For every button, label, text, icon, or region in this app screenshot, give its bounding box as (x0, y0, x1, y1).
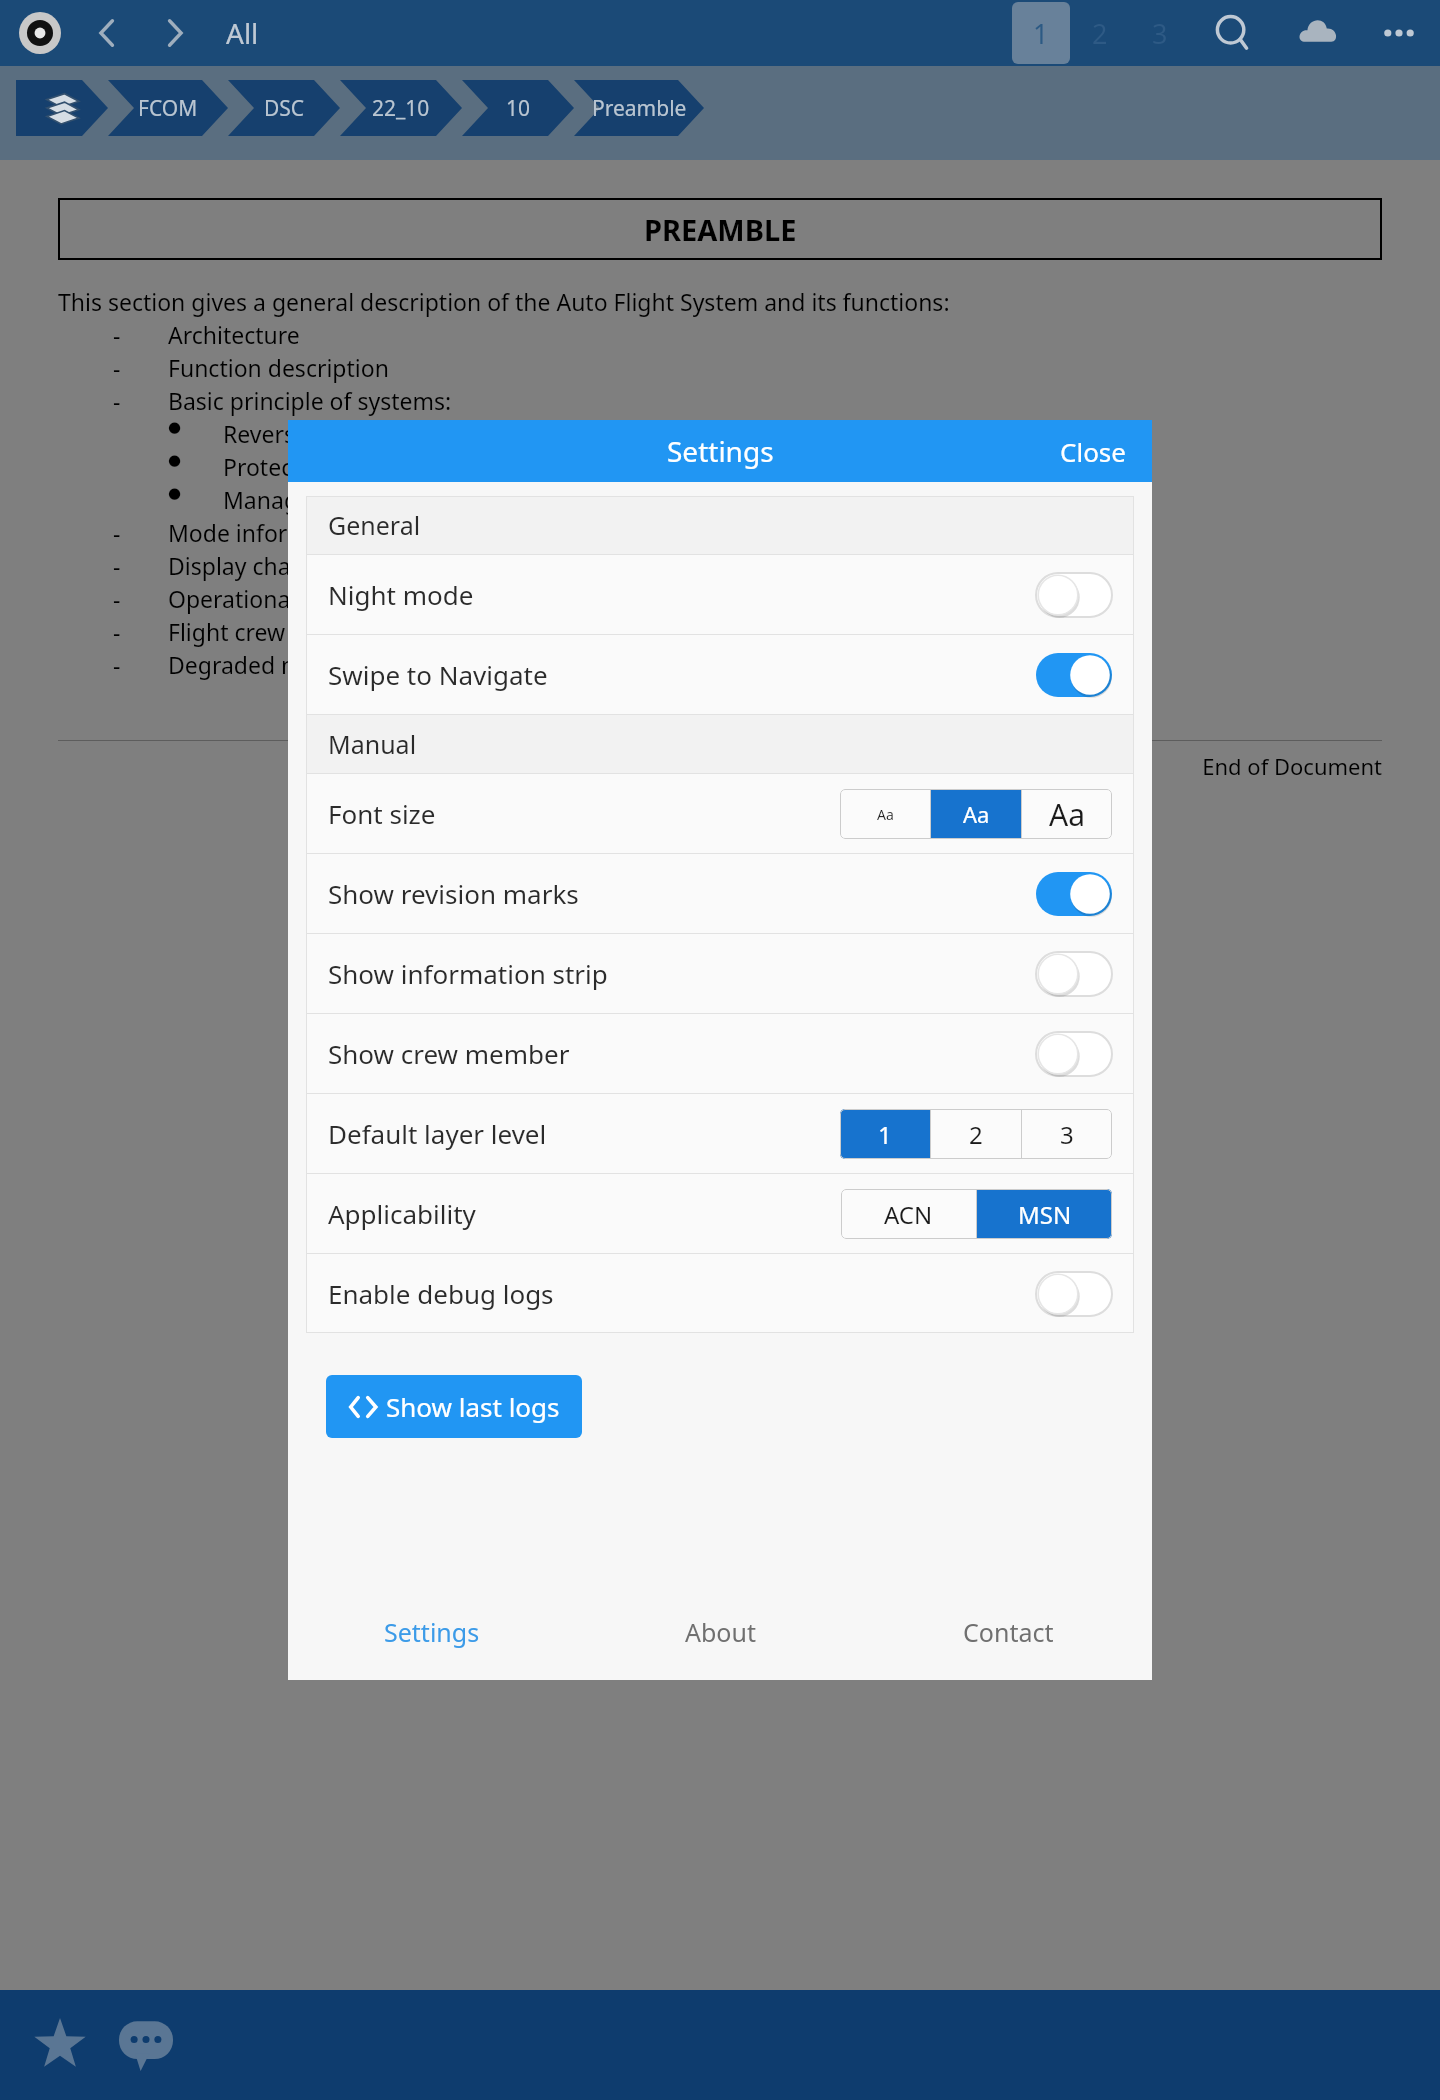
button[interactable]: About (576, 1584, 864, 1680)
button[interactable]: More options (1374, 8, 1424, 58)
staticText: ● (168, 418, 223, 435)
staticText: Managed and selected guidance (223, 484, 574, 515)
button[interactable]: Bookmarks (24, 2009, 96, 2081)
staticText: Applicability (328, 1196, 476, 1231)
staticText: Mode information (168, 517, 365, 548)
button[interactable]: Enable debug logs (306, 1254, 1134, 1333)
button[interactable]: MSN (977, 1189, 1112, 1239)
staticText: Protection (223, 451, 335, 482)
button[interactable]: Night mode (306, 555, 1134, 634)
button[interactable]: ACN (841, 1189, 976, 1239)
staticText: Show last logs (386, 1389, 560, 1424)
staticText: Show crew member (328, 1036, 570, 1071)
staticText: MSN (1018, 1198, 1072, 1231)
staticText: ● (168, 451, 223, 468)
button[interactable]: 2 (931, 1109, 1021, 1159)
staticText: About (685, 1615, 756, 1649)
button[interactable]: 22_10 (340, 80, 462, 136)
button[interactable]: All (226, 14, 259, 52)
staticText: - (113, 550, 168, 581)
staticText: - (113, 385, 168, 416)
button[interactable]: Show information strip (306, 934, 1134, 1013)
button[interactable]: 3 (1152, 15, 1168, 52)
staticText: Display characteristics (168, 550, 408, 581)
button[interactable]: 3 (1022, 1109, 1112, 1159)
staticText: Default layer level (328, 1116, 547, 1151)
staticText: Architecture (168, 319, 300, 350)
staticText: Aa (877, 805, 894, 824)
button[interactable]: 1 (840, 1109, 930, 1159)
staticText: Night mode (328, 577, 474, 612)
staticText: 2 (969, 1118, 983, 1151)
button[interactable]: Show revision marks (306, 854, 1134, 933)
button[interactable]: Contact (864, 1584, 1152, 1680)
staticText: DSC (264, 94, 305, 123)
staticText: PREAMBLE (644, 210, 797, 249)
staticText: General (328, 508, 421, 542)
button[interactable]: Back (84, 10, 130, 56)
button[interactable]: FCOM (108, 80, 228, 136)
staticText: Settings (667, 432, 774, 470)
button[interactable]: Aa (1022, 789, 1112, 839)
button[interactable]: DSC (228, 80, 340, 136)
staticText: Flight crew interface (168, 616, 387, 647)
staticText: This section gives a general description… (58, 286, 950, 317)
button[interactable]: Show last logs (326, 1375, 582, 1438)
staticText: ACN (884, 1198, 933, 1231)
staticText: Enable debug logs (328, 1276, 554, 1311)
staticText: - (113, 319, 168, 350)
button[interactable]: 2 (1092, 15, 1108, 52)
button[interactable]: Aa (931, 789, 1021, 839)
button[interactable]: Preamble (574, 80, 704, 136)
staticText: - (113, 583, 168, 614)
staticText: FCOM (138, 94, 198, 123)
button[interactable]: Notes (110, 2009, 182, 2081)
button[interactable]: Aa (840, 789, 930, 839)
staticText: - (113, 352, 168, 383)
staticText: 1 (1033, 15, 1049, 52)
button[interactable]: Settings (288, 1584, 576, 1680)
staticText: 1 (878, 1118, 892, 1151)
button[interactable]: Close (1034, 420, 1152, 482)
button[interactable]: Cloud sync (1292, 7, 1344, 59)
button[interactable]: Swipe to Navigate (306, 635, 1134, 714)
button[interactable]: Forward (152, 10, 198, 56)
staticText: Operational principles (168, 583, 408, 614)
staticText: 10 (506, 94, 531, 123)
staticText: Aa (963, 799, 990, 829)
staticText: Reversion (223, 418, 330, 449)
staticText: Swipe to Navigate (328, 657, 548, 692)
staticText: Close (1060, 434, 1126, 469)
staticText: - (113, 616, 168, 647)
staticText: Manual (328, 727, 417, 761)
button[interactable]: 1 (1012, 2, 1070, 64)
staticText: Degraded modes. (168, 649, 361, 680)
staticText: Aa (1049, 794, 1085, 835)
button[interactable]: Search (1208, 8, 1258, 58)
staticText: 22_10 (372, 94, 430, 123)
button[interactable]: 10 (462, 80, 574, 136)
staticText: Show information strip (328, 956, 608, 991)
staticText: - (113, 649, 168, 680)
staticText: Settings (384, 1615, 480, 1649)
staticText: Basic principle of systems: (168, 385, 452, 416)
staticText: ● (168, 484, 223, 501)
staticText: Function description (168, 352, 389, 383)
button[interactable] (16, 80, 108, 136)
staticText: Contact (963, 1615, 1054, 1649)
staticText: 3 (1060, 1118, 1074, 1151)
staticText: Show revision marks (328, 876, 579, 911)
staticText: Preamble (592, 94, 687, 123)
button[interactable]: Show crew member (306, 1014, 1134, 1093)
staticText: - (113, 517, 168, 548)
staticText: End of Document (58, 751, 1382, 781)
button[interactable]: Home (16, 9, 64, 57)
staticText: Font size (328, 796, 436, 831)
